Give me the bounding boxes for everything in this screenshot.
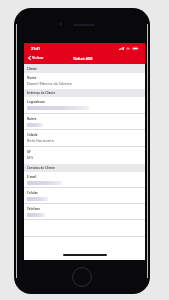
staticText: 21:41 bbox=[31, 46, 40, 51]
staticText: UF bbox=[27, 150, 32, 154]
button[interactable]: Cidade bbox=[24, 130, 145, 147]
staticText: Endereço do Cliente bbox=[27, 91, 56, 95]
staticText: Voltar bbox=[32, 55, 44, 61]
staticText: Belo Horizonte bbox=[27, 138, 54, 143]
button[interactable]: Voltar bbox=[24, 53, 47, 63]
button[interactable]: Nome bbox=[24, 73, 145, 89]
staticText: Ticket #58 bbox=[73, 56, 93, 61]
staticText: Cliente bbox=[27, 67, 38, 71]
button[interactable]: E-mail bbox=[24, 172, 145, 188]
staticText: Logradouro bbox=[27, 100, 45, 104]
button[interactable]: Bairro bbox=[24, 114, 145, 130]
staticText: Cidade bbox=[27, 133, 38, 137]
staticText: Nome bbox=[27, 76, 37, 80]
staticText: E-mail bbox=[27, 175, 37, 179]
staticText: Telefone bbox=[27, 207, 41, 211]
staticText: Contatos do Cliente bbox=[27, 166, 55, 170]
staticText: Bairro bbox=[27, 117, 37, 121]
staticText: Daniel Ribeiro da Silveira bbox=[27, 81, 72, 86]
button[interactable] bbox=[24, 220, 145, 237]
staticText: Celular bbox=[27, 191, 38, 195]
button[interactable]: Logradouro bbox=[24, 97, 145, 114]
button[interactable]: Telefone bbox=[24, 204, 145, 220]
button[interactable]: Celular bbox=[24, 188, 145, 204]
button[interactable]: UF bbox=[24, 147, 145, 164]
staticText: MG bbox=[27, 155, 34, 160]
